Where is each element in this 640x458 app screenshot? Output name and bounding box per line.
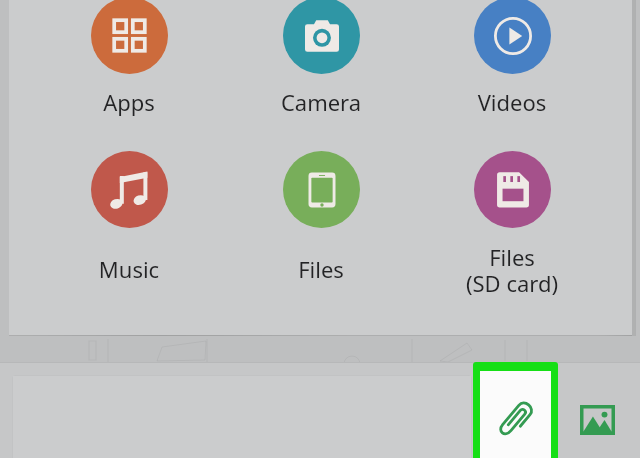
staticText: Videos — [450, 87, 574, 117]
staticText: Camera — [259, 87, 383, 117]
button[interactable]: Attach — [480, 371, 551, 458]
button[interactable]: Videos — [450, 0, 574, 141]
button[interactable]: Apps — [67, 0, 191, 141]
button[interactable]: Music — [67, 145, 191, 295]
button[interactable]: Files (SD card) — [450, 145, 574, 295]
staticText: Apps — [67, 87, 191, 117]
staticText: Music — [67, 254, 191, 284]
button[interactable]: Files — [259, 145, 383, 295]
staticText: Files (SD card) — [450, 242, 574, 298]
staticText: Files — [259, 254, 383, 284]
button[interactable]: Gallery — [568, 390, 627, 449]
button[interactable]: Camera — [259, 0, 383, 141]
